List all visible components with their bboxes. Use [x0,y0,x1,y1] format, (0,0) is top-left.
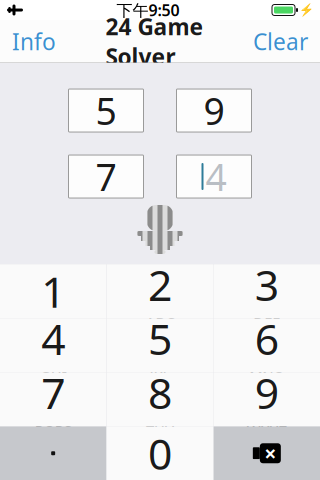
staticText: 4 [205,152,226,201]
button[interactable]: 1 [0,264,106,318]
button[interactable]: 8 [107,372,213,426]
staticText: 6 [255,310,279,367]
button[interactable]: 4 [0,318,106,372]
button[interactable]: Info [2,17,66,65]
button[interactable]: 2 [107,264,213,318]
button[interactable]: 7 [0,372,106,426]
staticText: Clear [253,26,308,56]
staticText: 5 [95,86,116,135]
button[interactable]: 5 [68,89,143,132]
staticText: 8 [148,364,172,421]
button[interactable]: Decimal point [0,426,106,480]
staticText: Info [12,26,56,56]
staticText: WXYZ [247,421,287,440]
button[interactable]: 6 [214,318,320,372]
button[interactable]: 4 [176,155,251,198]
button[interactable]: 5 [107,318,213,372]
staticText: 0 [148,425,172,480]
staticText: MNO [249,367,284,386]
staticText: 1 [41,263,65,320]
staticText: 2 [148,256,172,313]
staticText: JKL [149,367,170,386]
staticText: 下午9:50 [116,0,179,21]
staticText: 9 [203,86,224,135]
button[interactable]: 0 [107,426,213,480]
staticText: DEF [253,313,280,332]
staticText: TUV [146,421,174,440]
staticText: 3 [255,256,279,313]
staticText: 7 [95,152,116,201]
staticText: 9 [255,364,279,421]
staticText: GHI [40,367,67,386]
button[interactable]: 9 [214,372,320,426]
button[interactable]: Delete [214,426,320,480]
button[interactable]: 7 [68,155,143,198]
staticText: 5 [148,310,172,367]
staticText: ⚡ [299,3,314,17]
button[interactable]: 9 [176,89,251,132]
staticText: ABC [145,313,174,332]
staticText: PQRS [35,421,72,440]
button[interactable]: Clear [243,17,318,65]
staticText: 7 [41,364,65,421]
staticText: × [264,439,276,467]
button[interactable]: 3 [214,264,320,318]
staticText: 24 Game Solver [105,11,203,72]
staticText: 4 [41,310,65,367]
